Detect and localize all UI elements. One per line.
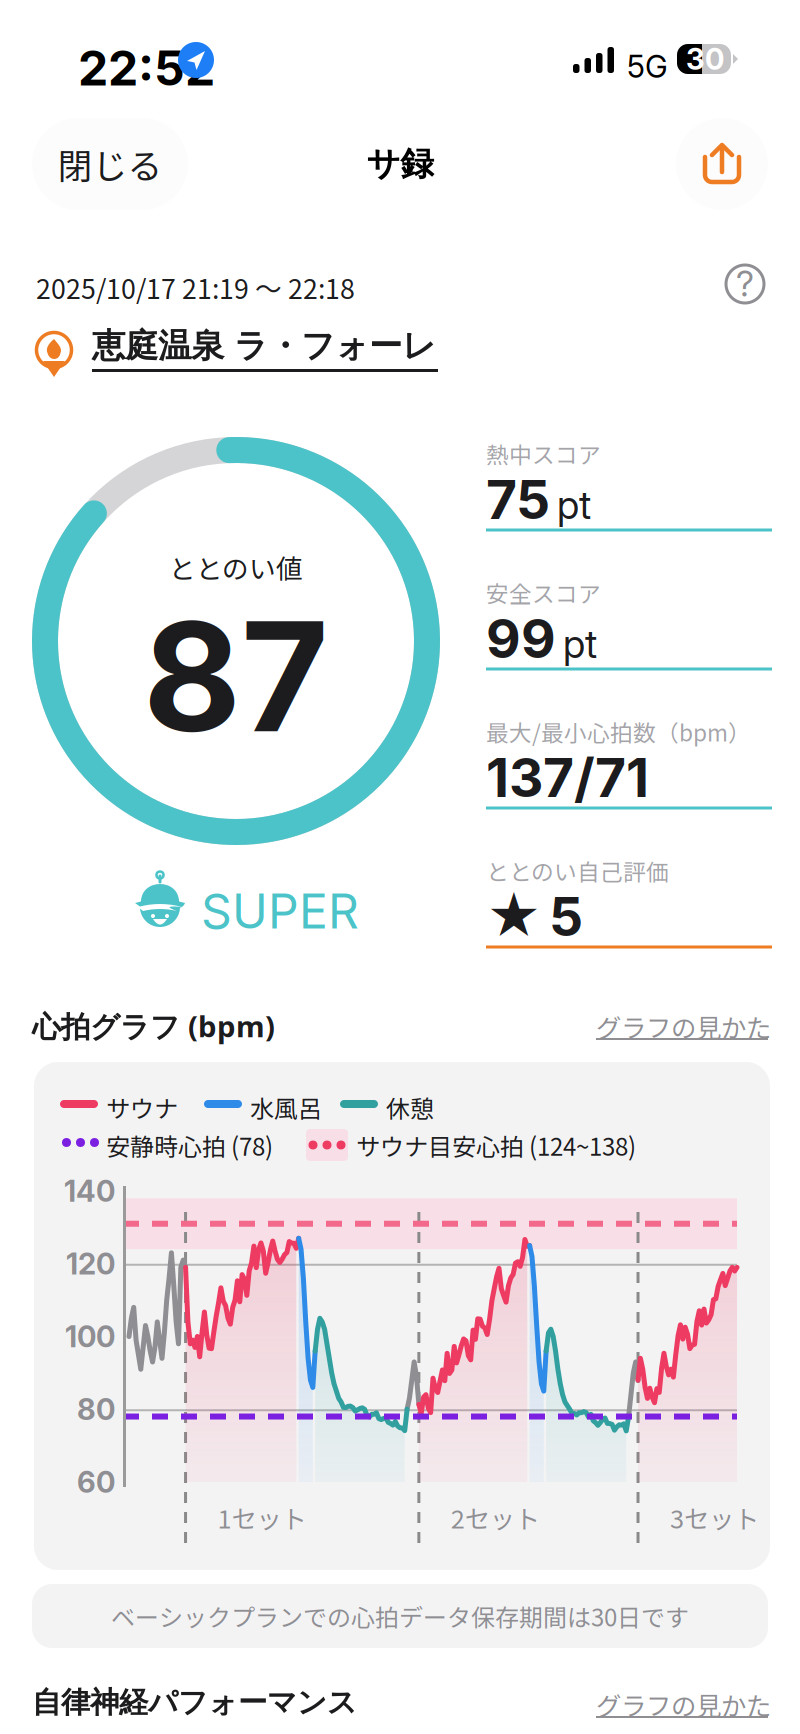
staticText: 100	[65, 1319, 115, 1354]
button[interactable]: 閉じる	[32, 118, 188, 210]
button[interactable]: グラフの見かた	[596, 1686, 768, 1722]
staticText: 22:52	[78, 39, 215, 97]
staticText: ベーシックプランでの心拍データ保存期間は30日です	[111, 1599, 689, 1633]
staticText: グラフの見かた	[596, 1008, 771, 1045]
staticText: 熱中スコア	[486, 437, 601, 470]
staticText: 2025/10/17 21:19 〜 22:18	[36, 268, 355, 307]
staticText: pt	[557, 481, 591, 528]
staticText: 3セット	[670, 1499, 759, 1536]
staticText: 安全スコア	[486, 576, 601, 609]
staticText: 60	[77, 1464, 115, 1500]
staticText: 安静時心拍 (78)	[106, 1128, 273, 1163]
staticText: 自律神経パフォーマンス	[32, 1684, 357, 1721]
staticText: ととのい値	[169, 548, 303, 586]
staticText: ととのい自己評価	[486, 854, 669, 887]
staticText: 1セット	[218, 1499, 307, 1536]
staticText: サ録	[366, 143, 433, 185]
staticText: 2セット	[451, 1499, 540, 1536]
staticText: グラフの見かた	[596, 1686, 771, 1723]
staticText: 140	[64, 1173, 115, 1209]
button[interactable]: Share	[676, 118, 768, 210]
staticText: 心拍グラフ (bpm)	[32, 1006, 275, 1046]
button[interactable]: Help	[718, 257, 772, 311]
staticText: 75	[486, 467, 550, 532]
staticText: ★	[486, 884, 542, 949]
staticText: 30	[686, 41, 724, 77]
staticText: pt	[563, 620, 597, 667]
staticText: 最大/最小心拍数（bpm）	[486, 715, 751, 748]
staticText: サウナ	[106, 1090, 178, 1125]
staticText: 休憩	[386, 1090, 434, 1125]
staticText: 5	[549, 884, 583, 949]
staticText: SUPER	[201, 882, 359, 940]
staticText: 99	[486, 606, 556, 671]
staticText: ?	[736, 263, 754, 305]
staticText: 137/71	[486, 745, 649, 810]
staticText: サウナ目安心拍 (124~138)	[356, 1128, 636, 1163]
button[interactable]: グラフの見かた	[596, 1008, 768, 1044]
staticText: 80	[77, 1391, 115, 1427]
staticText: 恵庭温泉 ラ・フォーレ	[92, 325, 436, 367]
staticText: 閉じる	[57, 139, 162, 189]
staticText: 水風呂	[250, 1090, 322, 1125]
button[interactable]: 恵庭温泉 ラ・フォーレ	[32, 325, 452, 379]
staticText: 87	[143, 585, 329, 768]
staticText: 5G	[627, 48, 668, 85]
staticText: 120	[66, 1246, 115, 1281]
